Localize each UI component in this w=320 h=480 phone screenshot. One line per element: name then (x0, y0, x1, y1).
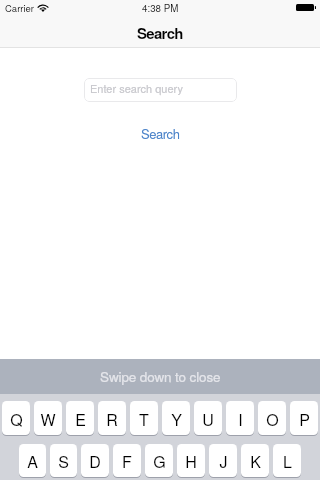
staticText: W (40, 408, 56, 431)
button[interactable]: S (50, 444, 77, 477)
staticText: Carrier (5, 1, 35, 15)
staticText: Search (137, 22, 183, 43)
button[interactable]: E (66, 401, 94, 435)
button[interactable]: Q (2, 401, 30, 435)
button[interactable]: Search (131, 122, 190, 145)
staticText: S (58, 450, 69, 473)
staticText: Search (141, 124, 180, 143)
button[interactable]: Y (162, 401, 190, 435)
other: Wi-Fi signal (38, 5, 48, 12)
button[interactable]: Enter search query (84, 78, 237, 102)
button[interactable]: K (241, 444, 269, 477)
button[interactable]: W (34, 401, 62, 435)
staticText: A (27, 450, 38, 473)
staticText: J (219, 450, 228, 473)
button[interactable]: R (98, 401, 126, 435)
staticText: Enter search query (90, 80, 184, 96)
staticText: Y (171, 408, 182, 431)
button[interactable]: U (194, 401, 222, 435)
button[interactable]: H (177, 444, 205, 477)
staticText: 4:38 PM (142, 1, 179, 15)
button[interactable]: D (81, 444, 109, 477)
other: Battery full (296, 4, 316, 11)
button[interactable]: L (273, 444, 301, 477)
staticText: T (139, 408, 149, 431)
button[interactable]: P (290, 401, 318, 435)
button[interactable]: A (19, 444, 46, 477)
staticText: Swipe down to close (100, 367, 221, 386)
staticText: L (283, 450, 292, 473)
staticText: O (266, 408, 279, 431)
button[interactable]: T (130, 401, 158, 435)
button[interactable]: I (226, 401, 254, 435)
staticText: K (250, 450, 261, 473)
button[interactable]: F (113, 444, 141, 477)
staticText: Q (10, 408, 23, 431)
staticText: I (238, 408, 243, 431)
staticText: R (106, 408, 118, 431)
staticText: E (75, 408, 86, 431)
button[interactable]: O (258, 401, 286, 435)
staticText: U (202, 408, 214, 431)
staticText: F (122, 450, 132, 473)
button[interactable]: J (209, 444, 237, 477)
staticText: H (185, 450, 197, 473)
staticText: G (153, 450, 166, 473)
staticText: P (299, 408, 310, 431)
staticText: D (89, 450, 101, 473)
button[interactable]: Swipe down to close (0, 359, 320, 394)
button[interactable]: G (145, 444, 173, 477)
